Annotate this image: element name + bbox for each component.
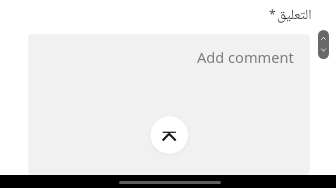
- staticText: Add comment: [197, 47, 294, 67]
- button[interactable]: Scroll to top: [150, 116, 189, 155]
- button[interactable]: Scroll: [318, 30, 329, 59]
- button[interactable]: Add comment: [28, 34, 310, 175]
- staticText: التعليق: [277, 4, 312, 28]
- staticText: *: [269, 6, 276, 22]
